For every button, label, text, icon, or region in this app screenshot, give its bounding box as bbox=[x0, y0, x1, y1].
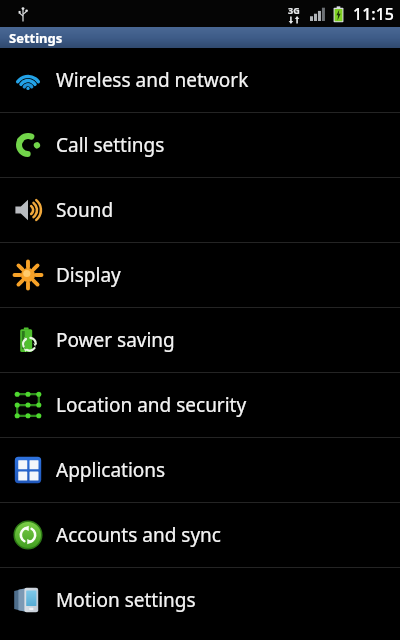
staticText: Power saving bbox=[56, 327, 175, 353]
staticText: Settings bbox=[9, 29, 63, 47]
button[interactable]: Location and security bbox=[0, 373, 400, 437]
other: USB connected bbox=[17, 5, 29, 23]
staticText: Location and security bbox=[56, 392, 247, 418]
button[interactable]: Applications bbox=[0, 438, 400, 502]
button[interactable]: Wireless and network bbox=[0, 48, 400, 112]
button[interactable]: Motion settings bbox=[0, 568, 400, 632]
button[interactable]: Power saving bbox=[0, 308, 400, 372]
staticText: Applications bbox=[56, 457, 166, 483]
button[interactable]: Sound bbox=[0, 178, 400, 242]
staticText: Sound bbox=[56, 197, 114, 223]
staticText: Accounts and sync bbox=[56, 522, 221, 548]
button[interactable]: Display bbox=[0, 243, 400, 307]
staticText: Display bbox=[56, 262, 121, 288]
staticText: 11:15 bbox=[353, 3, 394, 25]
staticText: Wireless and network bbox=[56, 67, 249, 93]
staticText: Call settings bbox=[56, 132, 165, 158]
staticText: 3G bbox=[288, 4, 300, 16]
button[interactable]: Accounts and sync bbox=[0, 503, 400, 567]
button[interactable]: Call settings bbox=[0, 113, 400, 177]
staticText: Motion settings bbox=[56, 587, 196, 613]
